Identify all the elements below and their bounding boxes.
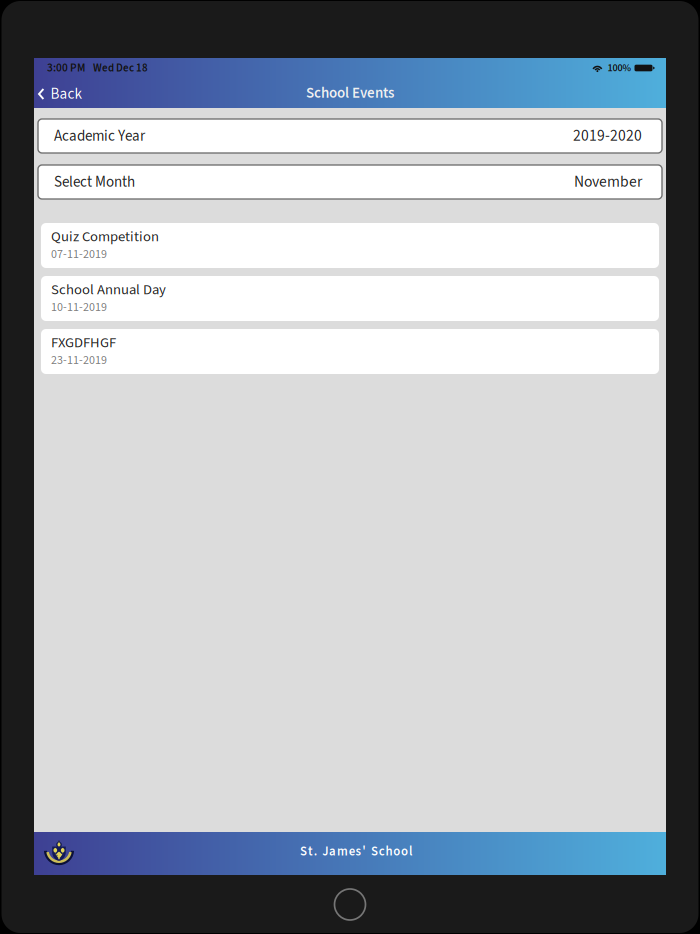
staticText: School Annual Day (51, 279, 166, 300)
staticText: 07-11-2019 (51, 246, 107, 263)
staticText: 3:00 PM (47, 60, 85, 76)
staticText: Academic Year (54, 125, 145, 147)
staticText: Back (50, 83, 82, 105)
staticText: 100% (607, 61, 631, 75)
staticText: November (574, 171, 642, 193)
staticText: FXGDFHGF (51, 332, 116, 353)
button[interactable]: School Annual Day (41, 276, 659, 321)
staticText: School Events (306, 82, 394, 104)
staticText: Select Month (54, 171, 135, 193)
staticText: 23-11-2019 (51, 352, 107, 369)
button[interactable]: Quiz Competition (41, 223, 659, 268)
button[interactable]: FXGDFHGF (41, 329, 659, 374)
button[interactable]: Back (34, 78, 92, 108)
staticText: Wed Dec 18 (93, 60, 148, 76)
staticText: 2019-2020 (573, 125, 642, 147)
button[interactable]: Select Month (38, 165, 662, 199)
button[interactable]: Academic Year (38, 119, 662, 153)
staticText: St. James' School (300, 842, 412, 861)
staticText: 10-11-2019 (51, 299, 107, 316)
staticText: Quiz Competition (51, 226, 159, 247)
